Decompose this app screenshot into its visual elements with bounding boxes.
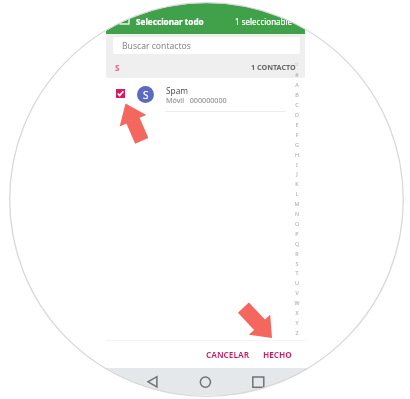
staticText: H — [291, 151, 303, 158]
staticText: F — [291, 131, 303, 138]
staticText: L — [291, 190, 303, 197]
staticText: W — [291, 299, 303, 306]
staticText: Z — [291, 329, 303, 336]
staticText: CANCELAR — [206, 349, 250, 360]
staticText: 1 seleccionable — [235, 16, 293, 27]
button[interactable]: Buscar contactos — [113, 37, 300, 54]
staticText: Seleccionar todo — [136, 16, 204, 27]
staticText: M — [291, 200, 303, 207]
staticText: Móvil 000000000 — [166, 95, 227, 105]
button[interactable]: Back — [143, 370, 165, 394]
staticText: U — [291, 279, 303, 286]
staticText: G — [291, 141, 303, 148]
staticText: X — [291, 309, 303, 316]
staticText: 1 CONTACTO — [251, 62, 296, 72]
button[interactable]: S — [106, 78, 305, 113]
staticText: B — [291, 91, 303, 98]
staticText: O — [291, 220, 303, 227]
button[interactable]: Home — [195, 370, 217, 394]
staticText: R — [291, 250, 303, 257]
staticText: S — [291, 260, 303, 267]
staticText: Y — [291, 319, 303, 326]
other: Select all checkbox — [120, 15, 129, 24]
staticText: HECHO — [263, 349, 292, 360]
staticText: P — [291, 230, 303, 237]
staticText: Spam — [166, 85, 189, 96]
staticText: Q — [291, 240, 303, 247]
button[interactable]: Select all checkbox — [106, 3, 305, 34]
staticText: A — [291, 81, 303, 88]
staticText: I — [291, 161, 303, 168]
button[interactable]: HECHO — [258, 346, 296, 362]
staticText: T — [291, 269, 303, 276]
staticText: S — [115, 62, 120, 73]
staticText: Buscar contactos — [122, 40, 191, 52]
staticText: E — [291, 121, 303, 128]
staticText: J — [291, 170, 303, 177]
staticText: # — [291, 71, 303, 78]
staticText: V — [291, 289, 303, 296]
staticText: S — [143, 88, 149, 102]
staticText: D — [291, 111, 303, 118]
staticText: ☆ — [291, 61, 303, 68]
staticText: C — [291, 101, 303, 108]
button[interactable]: CANCELAR — [200, 346, 255, 362]
staticText: K — [291, 180, 303, 187]
staticText: N — [291, 210, 303, 217]
button[interactable]: Recent apps — [247, 370, 269, 394]
